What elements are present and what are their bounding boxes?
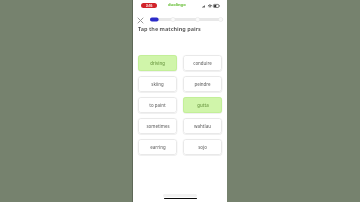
staticText: gutta	[197, 102, 209, 108]
staticText: conduire	[193, 60, 212, 66]
staticText: sojo	[198, 144, 207, 150]
button[interactable]: conduire	[183, 55, 222, 71]
staticText: driving	[150, 60, 165, 66]
staticText: 2:16	[146, 4, 153, 8]
staticText: earring	[150, 144, 166, 150]
button[interactable]: earring	[138, 139, 177, 155]
button[interactable]: sojo	[183, 139, 222, 155]
button[interactable]: wahtlau	[183, 118, 222, 134]
button[interactable]: gutta	[183, 97, 222, 113]
staticText: peindre	[194, 81, 211, 87]
button[interactable]: driving	[138, 55, 177, 71]
button[interactable]: peindre	[183, 76, 222, 92]
button[interactable]: Close	[136, 16, 145, 24]
button[interactable]: sometimes	[138, 118, 177, 134]
button[interactable]: to paint	[138, 97, 177, 113]
staticText: sometimes	[146, 123, 170, 129]
staticText: skiing	[151, 81, 164, 87]
staticText: Tap the matching pairs	[138, 25, 201, 32]
staticText: duolingo	[168, 2, 186, 7]
staticText: to paint	[149, 102, 166, 108]
button[interactable]: skiing	[138, 76, 177, 92]
staticText: wahtlau	[194, 123, 211, 129]
